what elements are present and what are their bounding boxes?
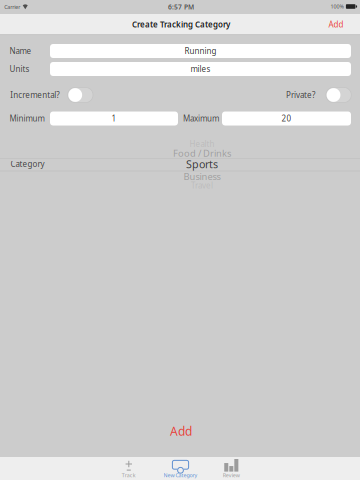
staticText: Incremental?: [10, 90, 59, 100]
button[interactable]: Review: [205, 457, 257, 480]
staticText: 1: [111, 113, 116, 124]
button[interactable]: Add: [321, 14, 351, 35]
staticText: Carrier: [4, 3, 20, 11]
staticText: Running: [184, 46, 216, 56]
staticText: Track: [122, 472, 136, 479]
button[interactable]: New Category: [154, 457, 206, 480]
staticText: Business: [183, 170, 220, 182]
staticText: Name: [9, 46, 31, 56]
staticText: Travel: [191, 180, 213, 191]
button[interactable]: Track: [103, 457, 155, 480]
staticText: Add: [170, 423, 192, 439]
staticText: Add: [328, 19, 343, 30]
staticText: Category: [10, 159, 44, 169]
staticText: Health: [189, 139, 214, 149]
staticText: Maximum: [183, 113, 219, 124]
button[interactable]: Running: [50, 44, 351, 58]
staticText: 20: [281, 113, 291, 124]
button[interactable]: Add: [151, 420, 211, 442]
staticText: Private?: [286, 90, 315, 100]
button[interactable]: 1: [50, 111, 178, 125]
staticText: Create Tracking Category: [132, 19, 230, 30]
staticText: Sports: [186, 157, 218, 171]
button[interactable]: miles: [50, 62, 351, 76]
staticText: 6:57 PM: [168, 3, 194, 11]
button[interactable]: Toggle: [67, 87, 93, 103]
button[interactable]: Toggle: [326, 87, 351, 103]
staticText: Food / Drinks: [173, 147, 231, 159]
staticText: 100%: [330, 3, 343, 10]
button[interactable]: 20: [222, 111, 351, 125]
staticText: Review: [223, 472, 240, 479]
staticText: Minimum: [9, 113, 44, 124]
staticText: New Category: [163, 472, 197, 479]
staticText: Units: [9, 64, 29, 74]
staticText: miles: [190, 64, 210, 74]
